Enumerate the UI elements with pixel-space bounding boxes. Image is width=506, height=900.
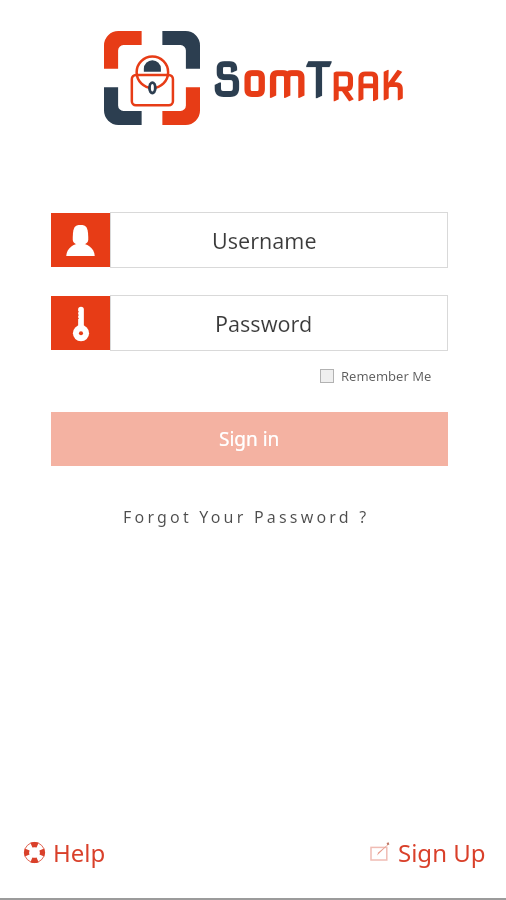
button[interactable]: Forgot Your Password ?	[117, 501, 376, 533]
staticText: RAK	[330, 64, 405, 109]
button[interactable]: Sign Up	[369, 836, 486, 869]
staticText: T	[306, 53, 330, 109]
staticText: Sign Up	[398, 836, 486, 869]
staticText: Help	[53, 836, 106, 869]
button[interactable]: Sign in	[51, 412, 448, 466]
button[interactable]: Username	[51, 212, 448, 268]
staticText: om	[241, 53, 306, 109]
staticText: Username	[212, 226, 317, 255]
button[interactable]: Remember Me	[320, 367, 432, 385]
staticText: Sign in	[219, 426, 280, 452]
button[interactable]: Password	[51, 295, 448, 351]
staticText: Forgot Your Password ?	[123, 506, 370, 528]
button[interactable]: Help	[24, 836, 106, 869]
staticText: S	[211, 53, 241, 109]
staticText: Remember Me	[341, 367, 432, 385]
other: Help	[24, 842, 45, 863]
other: Sign Up	[369, 843, 389, 863]
staticText: Password	[215, 309, 313, 338]
